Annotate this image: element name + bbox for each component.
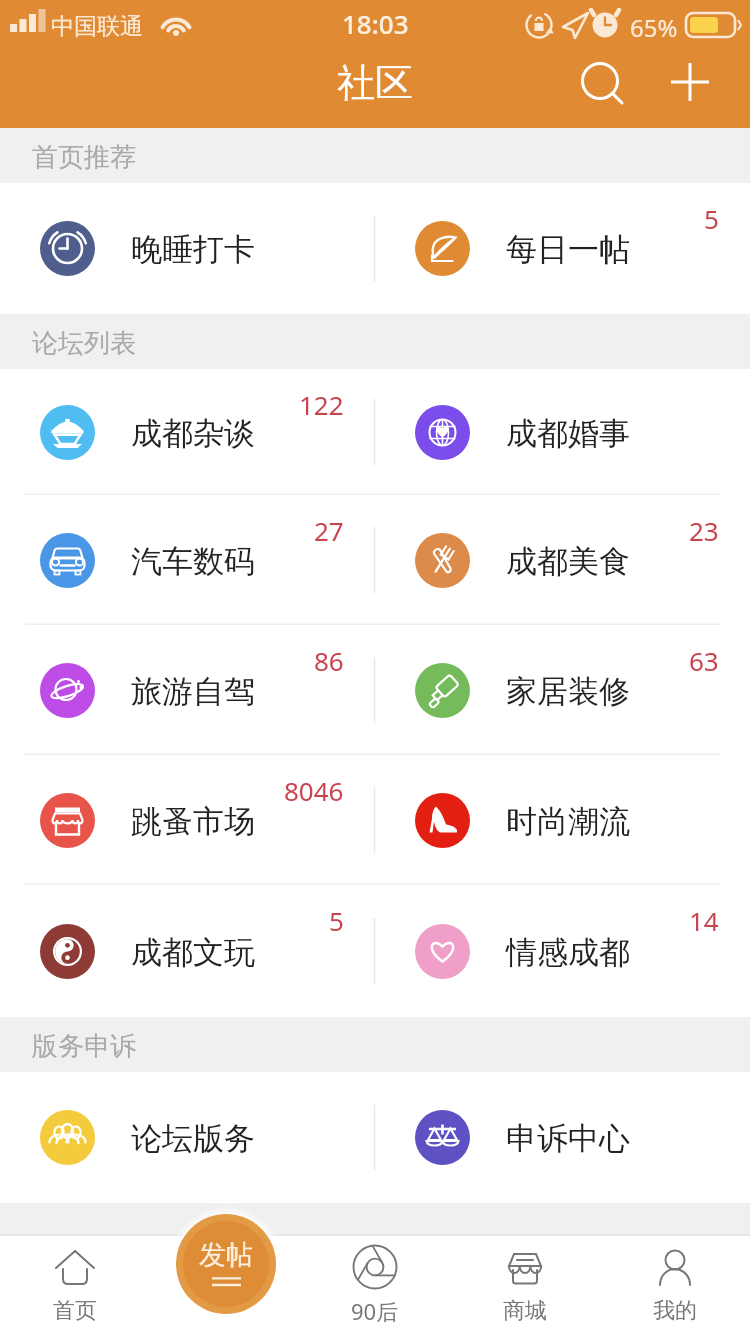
staticText: 23 xyxy=(689,513,719,548)
staticText: 申诉中心 xyxy=(506,1119,630,1158)
staticText: 成都美食 xyxy=(506,542,630,581)
staticText: 成都婚事 xyxy=(506,414,630,453)
button[interactable]: 首页 xyxy=(0,1235,150,1334)
staticText: 成都杂谈 xyxy=(131,414,255,453)
staticText: 14 xyxy=(689,903,719,938)
staticText: 86 xyxy=(314,643,344,678)
staticText: 晚睡打卡 xyxy=(131,230,255,269)
staticText: 63 xyxy=(689,643,719,678)
button[interactable]: 成都婚事 xyxy=(375,369,750,495)
button[interactable]: 跳蚤市场 xyxy=(0,755,375,885)
button[interactable]: 90后 xyxy=(300,1235,450,1334)
button[interactable]: 成都杂谈 xyxy=(0,369,375,495)
staticText: 中国联通 xyxy=(51,12,143,41)
staticText: 汽车数码 xyxy=(131,542,255,581)
button[interactable]: 搜索 xyxy=(565,54,635,124)
button[interactable]: 每日一帖 xyxy=(375,183,750,314)
staticText: 65% xyxy=(630,11,678,44)
staticText: 5 xyxy=(704,201,719,236)
staticText: 27 xyxy=(314,513,344,548)
button[interactable]: 汽车数码 xyxy=(0,495,375,625)
staticText: 旅游自驾 xyxy=(131,672,255,711)
staticText: 122 xyxy=(299,387,344,422)
button[interactable]: 添加 xyxy=(655,54,725,124)
button[interactable]: 发帖 xyxy=(176,1214,276,1314)
staticText: 版务申诉 xyxy=(32,1030,136,1063)
staticText: 18:03 xyxy=(342,6,409,41)
staticText: 发帖 xyxy=(199,1238,253,1272)
staticText: 商城 xyxy=(503,1297,547,1325)
staticText: 首页推荐 xyxy=(32,141,136,174)
staticText: 成都文玩 xyxy=(131,933,255,972)
button[interactable]: 论坛版务 xyxy=(0,1072,375,1203)
staticText: 论坛列表 xyxy=(32,327,136,360)
button[interactable]: 我的 xyxy=(600,1235,750,1334)
staticText: 每日一帖 xyxy=(506,230,630,269)
staticText: 首页 xyxy=(53,1297,97,1325)
staticText: 时尚潮流 xyxy=(506,802,630,841)
button[interactable]: 时尚潮流 xyxy=(375,755,750,885)
button[interactable]: 成都文玩 xyxy=(0,885,375,1017)
button[interactable]: 晚睡打卡 xyxy=(0,183,375,314)
button[interactable]: 旅游自驾 xyxy=(0,625,375,755)
staticText: 我的 xyxy=(653,1297,697,1325)
staticText: 家居装修 xyxy=(506,672,630,711)
button[interactable]: 申诉中心 xyxy=(375,1072,750,1203)
staticText: 跳蚤市场 xyxy=(131,802,255,841)
button[interactable]: 情感成都 xyxy=(375,885,750,1017)
staticText: 社区 xyxy=(337,59,413,107)
staticText: 5 xyxy=(329,903,344,938)
button[interactable]: 商城 xyxy=(450,1235,600,1334)
staticText: 90后 xyxy=(351,1296,399,1326)
button[interactable]: 成都美食 xyxy=(375,495,750,625)
staticText: 8046 xyxy=(284,773,344,808)
button[interactable]: 家居装修 xyxy=(375,625,750,755)
staticText: 情感成都 xyxy=(506,933,630,972)
staticText: 论坛版务 xyxy=(131,1119,255,1158)
